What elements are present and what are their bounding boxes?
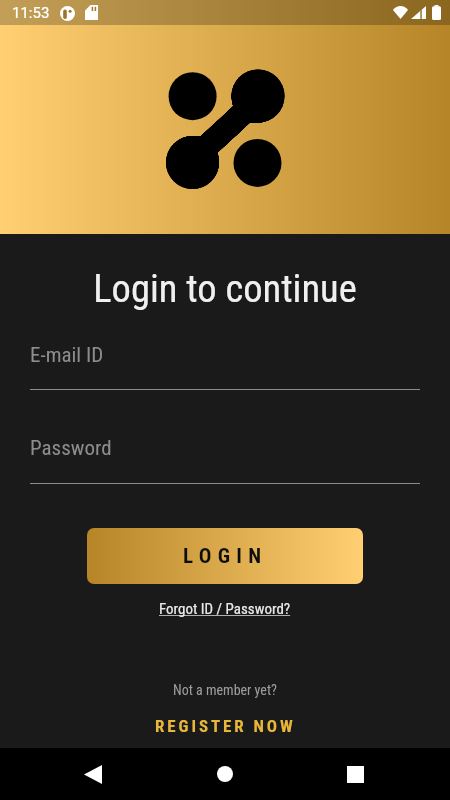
button[interactable]: Back bbox=[57, 748, 129, 800]
button[interactable]: Recent apps bbox=[319, 748, 391, 800]
staticText: Not a member yet? bbox=[0, 682, 450, 698]
staticText: LOGIN bbox=[183, 544, 268, 569]
staticText: Password bbox=[30, 436, 112, 461]
staticText: Login to continue bbox=[0, 266, 450, 311]
staticText: REGISTER NOW bbox=[155, 716, 296, 736]
staticText: Forgot ID / Password? bbox=[159, 600, 291, 618]
staticText: E-mail ID bbox=[30, 343, 104, 368]
button[interactable]: LOGIN bbox=[87, 528, 363, 584]
button[interactable]: Forgot ID / Password? bbox=[153, 598, 297, 620]
button[interactable]: Home bbox=[189, 748, 261, 800]
staticText: 11:53 bbox=[12, 4, 50, 22]
button[interactable]: REGISTER NOW bbox=[149, 714, 302, 738]
